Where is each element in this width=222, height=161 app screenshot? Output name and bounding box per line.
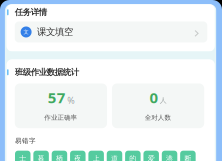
staticText: 任务详情	[15, 7, 47, 18]
button[interactable]: 夜	[70, 151, 86, 161]
button[interactable]: 暮	[33, 151, 49, 161]
staticText: 夜	[74, 154, 81, 161]
button[interactable]: 断	[180, 151, 196, 161]
staticText: 易错字	[15, 137, 36, 145]
button[interactable]: 文	[15, 21, 207, 42]
staticText: 道	[111, 154, 118, 161]
button[interactable]: 上	[88, 151, 104, 161]
staticText: 的	[129, 154, 136, 161]
button[interactable]: 的	[125, 151, 141, 161]
staticText: %	[67, 94, 74, 106]
button[interactable]: 港	[162, 151, 177, 161]
staticText: 作业正确率	[44, 113, 77, 122]
staticText: 班级作业数据统计	[15, 67, 79, 78]
staticText: 港	[166, 154, 173, 161]
staticText: 上	[93, 154, 100, 161]
button[interactable]: 道	[107, 151, 122, 161]
button[interactable]: 士	[15, 151, 30, 161]
staticText: 士	[19, 154, 26, 161]
staticText: 0	[149, 87, 158, 108]
staticText: 课文填空	[37, 26, 73, 38]
button[interactable]: 爱	[143, 151, 159, 161]
staticText: 断	[184, 154, 191, 161]
staticText: 栖	[56, 154, 63, 161]
staticText: 人	[160, 96, 167, 105]
staticText: 全对人数	[145, 113, 171, 122]
staticText: 暮	[38, 154, 45, 161]
staticText: 57	[48, 87, 66, 108]
staticText: 爱	[148, 154, 155, 161]
staticText: 文	[24, 29, 29, 35]
button[interactable]: 栖	[52, 151, 67, 161]
